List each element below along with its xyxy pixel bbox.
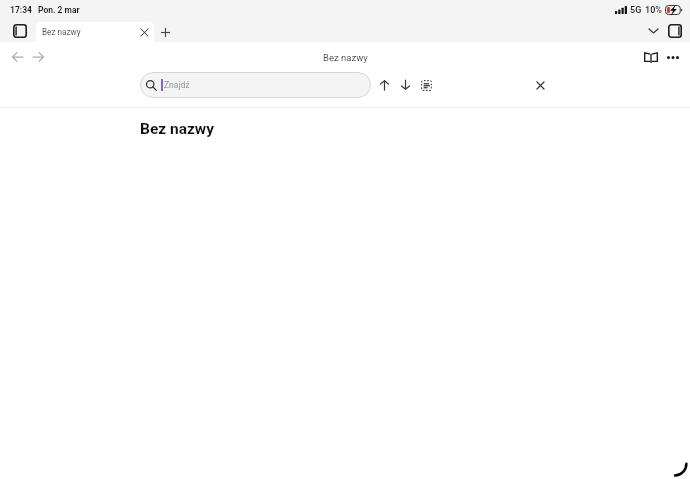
button[interactable]: Znajdź <box>140 72 371 98</box>
button[interactable]: Toggle sidebar <box>9 20 31 41</box>
button[interactable]: Show tab list <box>642 20 664 41</box>
button[interactable]: New tab <box>155 22 175 42</box>
staticText: Bez nazwy <box>323 52 368 63</box>
button[interactable]: More options <box>661 43 684 71</box>
button[interactable]: Close find bar <box>528 71 552 99</box>
staticText: Bez nazwy <box>140 120 215 138</box>
button[interactable]: Back <box>6 43 29 71</box>
staticText: Bez nazwy <box>42 27 81 37</box>
staticText: 10% <box>645 5 662 16</box>
button[interactable]: Reading mode <box>639 43 662 71</box>
staticText: Znajdź <box>164 80 190 90</box>
button[interactable]: Open sidebar <box>664 20 686 41</box>
staticText: 5G <box>630 5 642 16</box>
button[interactable]: Previous match <box>373 71 395 99</box>
button[interactable]: Highlight all matches <box>415 71 437 99</box>
staticText: Pon. 2 mar <box>38 5 80 15</box>
staticText: 17:34 <box>10 5 32 15</box>
button[interactable]: Forward <box>27 43 50 71</box>
button[interactable]: Next match <box>394 71 416 99</box>
button[interactable]: Bez nazwy <box>36 22 154 42</box>
button[interactable]: Close tab <box>137 25 152 40</box>
